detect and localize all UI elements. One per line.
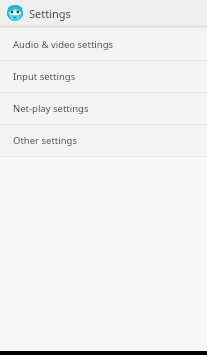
- button[interactable]: Audio & video settings: [0, 29, 207, 60]
- staticText: Audio & video settings: [13, 38, 114, 51]
- button[interactable]: Net-play settings: [0, 93, 207, 124]
- other: App icon: [6, 4, 24, 22]
- button[interactable]: Input settings: [0, 61, 207, 92]
- staticText: Net-play settings: [13, 102, 89, 115]
- staticText: Other settings: [13, 134, 77, 147]
- staticText: Settings: [29, 6, 71, 21]
- button[interactable]: Other settings: [0, 125, 207, 156]
- staticText: Input settings: [13, 70, 76, 83]
